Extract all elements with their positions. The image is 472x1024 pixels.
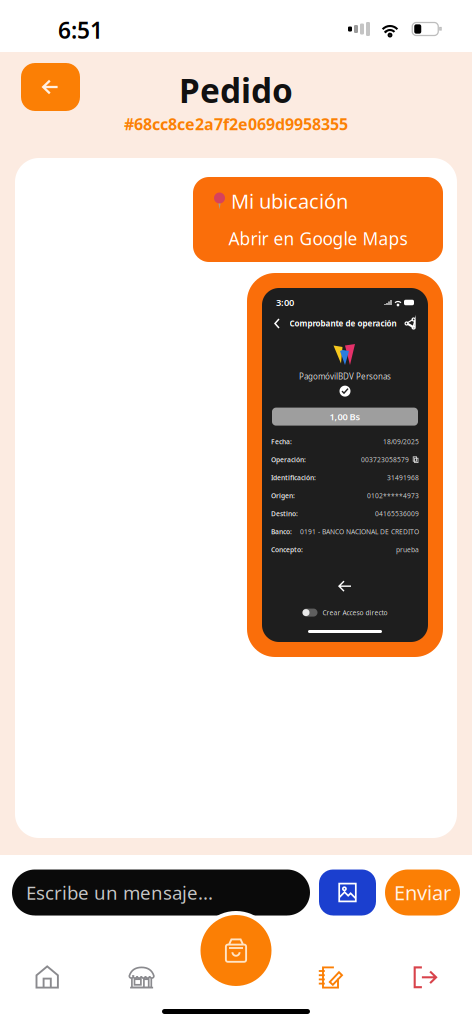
staticText: 003723058579 xyxy=(361,455,409,464)
staticText: 0191 - BANCO NACIONAL DE CREDITO xyxy=(300,527,419,536)
button[interactable]: Mi ubicación xyxy=(193,177,443,262)
button[interactable]: Atrás xyxy=(21,63,80,111)
staticText: PagomóvilBDV Personas xyxy=(299,371,391,382)
staticText: Identificación: xyxy=(271,473,316,482)
staticText: 0102*****4973 xyxy=(367,491,419,500)
staticText: 31491968 xyxy=(387,473,419,482)
button[interactable]: Tienda xyxy=(94,947,189,1007)
staticText: Enviar xyxy=(394,879,451,906)
staticText: Mi ubicación xyxy=(231,188,348,214)
staticText: #68cc8ce2a7f2e069d9958355 xyxy=(124,113,348,135)
staticText: Pedido xyxy=(179,68,293,112)
button[interactable]: Salir xyxy=(378,947,472,1007)
button[interactable]: Adjuntar imagen xyxy=(319,869,376,915)
staticText: Destino: xyxy=(271,509,298,518)
staticText: 1,00 Bs xyxy=(329,410,360,423)
staticText: 3:00 xyxy=(276,296,294,309)
button[interactable]: Pedidos xyxy=(283,947,378,1007)
button[interactable]: Enviar xyxy=(385,869,460,915)
staticText: Crear Acceso directo xyxy=(322,608,387,617)
staticText: Origen: xyxy=(271,491,295,500)
button[interactable]: Carrito xyxy=(196,911,275,990)
staticText: Operación: xyxy=(271,455,306,464)
staticText: Escribe un mensaje... xyxy=(26,880,213,905)
staticText: 18/09/2025 xyxy=(383,437,419,446)
staticText: Abrir en Google Maps xyxy=(228,227,407,250)
staticText: Comprobante de operación xyxy=(289,318,396,329)
staticText: Concepto: xyxy=(271,545,303,554)
staticText: prueba xyxy=(396,545,419,554)
staticText: Fecha: xyxy=(271,437,292,446)
staticText: 6:51 xyxy=(58,15,103,45)
button[interactable]: Escribe un mensaje... xyxy=(12,869,310,915)
button[interactable]: Inicio xyxy=(0,947,94,1007)
staticText: Banco: xyxy=(271,527,292,536)
staticText: 04165536009 xyxy=(375,509,419,518)
